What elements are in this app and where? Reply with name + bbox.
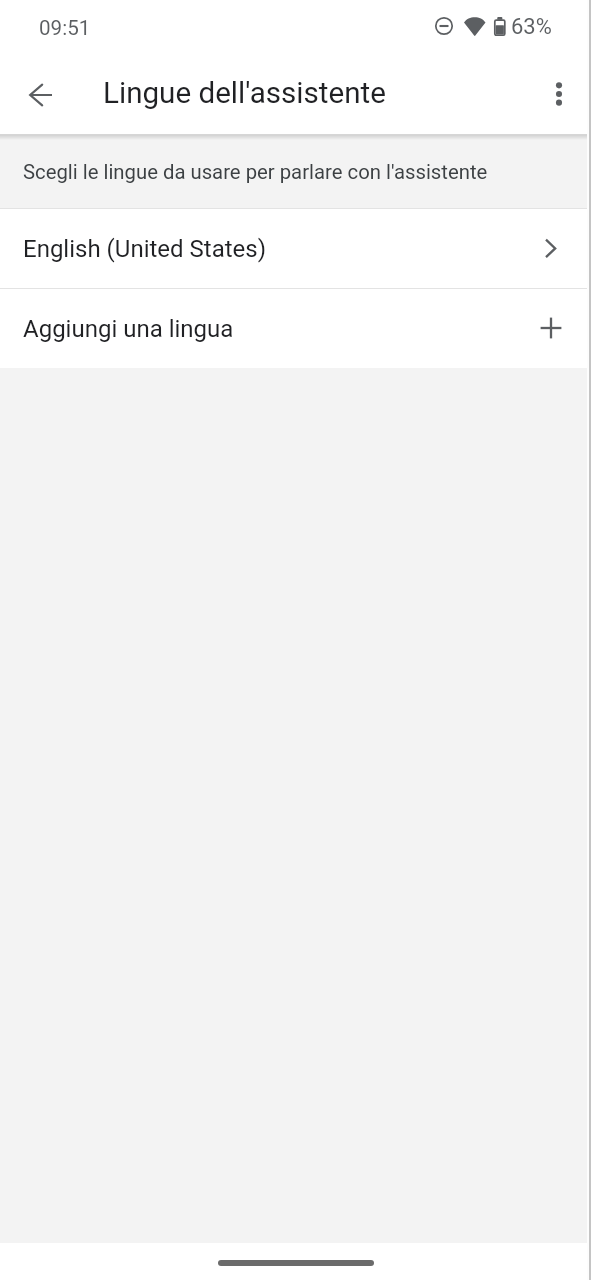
staticText: Aggiungi una lingua	[23, 315, 567, 343]
button[interactable]: Open English (United States)	[0, 209, 591, 288]
staticText: English (United States)	[23, 235, 567, 263]
button[interactable]: More options	[535, 70, 583, 118]
staticText: Lingue dell'assistente	[103, 76, 386, 111]
button[interactable]: Aggiungi una lingua	[0, 289, 591, 368]
staticText: 63%	[511, 14, 552, 40]
button[interactable]: Back	[17, 71, 65, 119]
staticText: Scegli le lingue da usare per parlare co…	[23, 160, 488, 184]
staticText: 09:51	[39, 16, 91, 40]
